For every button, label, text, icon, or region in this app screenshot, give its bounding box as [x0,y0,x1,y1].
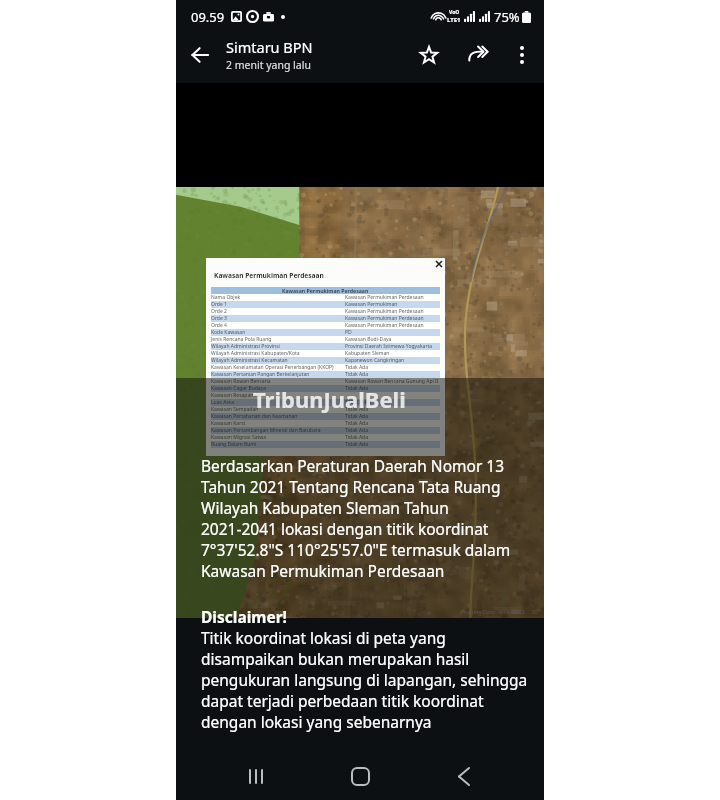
staticText: Kawasan Resapan Air [211,392,262,399]
staticText: Luas Area [211,399,234,406]
staticText: Tidak Ada [345,420,368,427]
staticText: Kabupaten Sleman [345,350,390,357]
staticText: Kawasan Permukiman Perdesaan [345,315,424,322]
staticText: Imagery Date: 4/14/2022 36 [460,608,538,615]
staticText: 09.59 [191,8,225,26]
staticText: VoO [449,9,460,16]
staticText: Orde 1 [211,301,227,308]
staticText: Tidak Ada [345,385,368,392]
staticText: Kawasan Permukiman [345,301,398,308]
staticText: Tidak Ada [345,441,368,448]
staticText: Kawasan Keselamatan Operasi Penerbangan … [211,364,334,371]
staticText: Wilayah Administrasi Provinsi [211,343,280,350]
staticText: Kawasan Cagar Budaya [211,385,267,392]
staticText: Kawasan Permukiman Perdesaan [345,294,424,301]
staticText: Simtaru BPN [226,37,313,57]
staticText: 570.835481 [345,399,373,406]
staticText: Kawasan Pertambangan Mineral dan Batubar… [211,427,321,434]
button[interactable]: Star [407,33,451,76]
staticText: Kapanewon Cangkringan [345,357,405,364]
button[interactable]: Recents [232,752,280,800]
staticText: LTE1 [447,16,461,24]
staticText: Kawasan Permukiman Perdesaan [345,308,424,315]
staticText: Kawasan Sempadan [211,406,259,413]
staticText: Berdasarkan Peraturan Daerah Nomor 13 Ta… [201,455,511,581]
staticText: Kawasan Pertanian Pangan Berkelanjutan [211,371,310,378]
staticText: Tidak Ada [345,406,368,413]
staticText: 2 menit yang lalu [226,58,311,72]
staticText: Nama Objek [211,294,241,301]
staticText: Jenis Rencana Pola Ruang [211,336,272,343]
staticText: Kawasan Rawan Bencana Gunung Api II [345,378,439,385]
staticText: Kawasan Pertahanan dan Keamanan [211,413,298,420]
staticText: Tidak Ada [345,371,368,378]
staticText: Kode Kawasan [211,329,246,336]
staticText: Orde 2 [211,308,227,315]
staticText: Wilayah Administrasi Kecamatan [211,357,288,364]
staticText: Tidak Ada [345,434,368,441]
staticText: Disclaimer! [201,606,287,627]
button[interactable]: Home [336,752,384,800]
staticText: Kawasan Migrasi Satwa [211,434,266,441]
staticText: PD [345,329,352,336]
staticText: Tidak Ada [345,413,368,420]
staticText: Tidak Ada [345,427,368,434]
staticText: Wilayah Administrasi Kabupaten/Kota [211,350,300,357]
staticText: Kawasan Rawan Bencana [211,378,271,385]
staticText: Provinsi Daerah Istimewa Yogyakarta [345,343,433,350]
button[interactable]: Back [440,752,488,800]
staticText: Orde 4 [211,322,227,329]
staticText: Ruang Dalam Bumi [211,441,257,448]
staticText: Orde 3 [211,315,227,322]
button[interactable]: Close [433,258,445,270]
staticText: Kawasan Karst [211,420,246,427]
staticText: Titik koordinat lokasi di peta yang disa… [201,627,528,732]
staticText: Kawasan Permukiman Perdesaan [282,287,369,294]
staticText: TribunJualBeli [253,384,406,414]
staticText: Kawasan Permukiman Perdesaan [345,322,424,329]
staticText: Tidak Ada [345,364,368,371]
button[interactable]: More options [500,33,544,76]
staticText: 75% [494,8,520,26]
staticText: Kawasan Permukiman Perdesaan [214,271,324,280]
staticText: Kawasan Budi-Daya [345,336,392,343]
button[interactable]: Forward [456,33,500,76]
button[interactable]: Back [180,35,220,75]
